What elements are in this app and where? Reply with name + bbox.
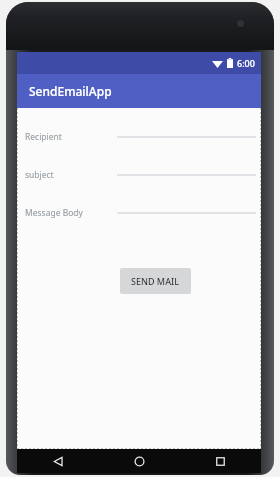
button[interactable]: Recent apps (180, 449, 261, 473)
button[interactable]: Recipient (17, 126, 261, 148)
staticText: Message Body (25, 207, 83, 219)
staticText: subject (25, 169, 54, 181)
button[interactable]: Back (17, 449, 99, 473)
button[interactable]: Home (99, 449, 180, 473)
staticText: SendEmailApp (29, 83, 112, 99)
button[interactable]: Message Body (17, 202, 261, 224)
staticText: SEND MAIL (131, 275, 180, 287)
staticText: Recipient (25, 131, 62, 143)
button[interactable]: SEND MAIL (120, 268, 191, 294)
button[interactable]: subject (17, 164, 261, 186)
staticText: 6:00 (237, 57, 255, 69)
